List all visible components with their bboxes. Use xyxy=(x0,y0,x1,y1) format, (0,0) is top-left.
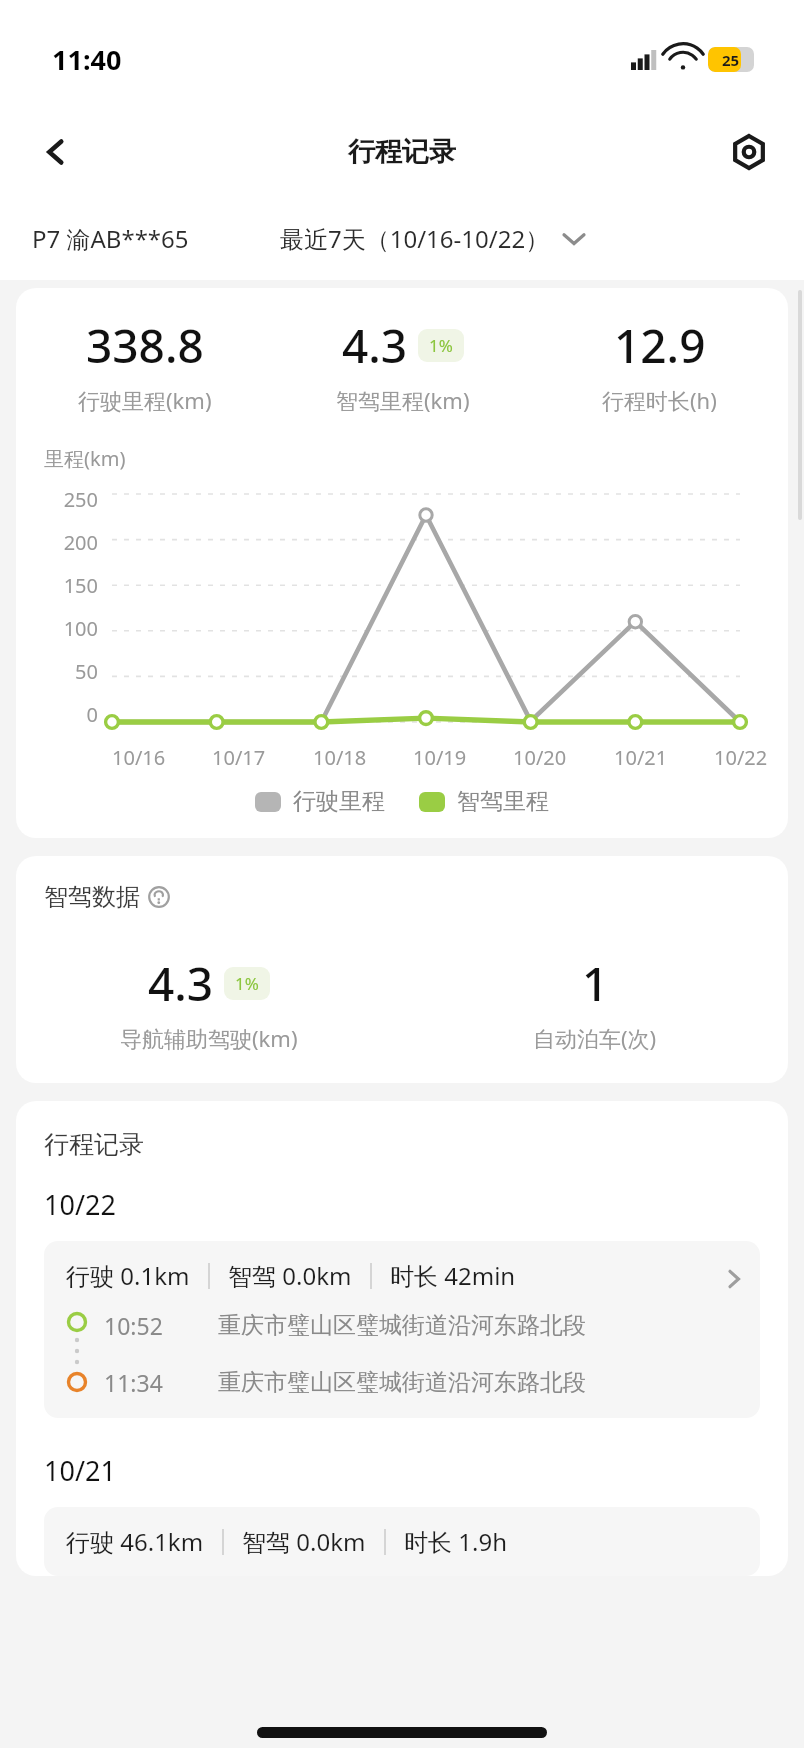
staticText: 行程记录 xyxy=(44,1129,144,1160)
staticText: 150 xyxy=(44,572,98,599)
staticText: 10/16 xyxy=(112,744,166,771)
staticText: 重庆市璧山区璧城街道沿河东路北段 xyxy=(218,1311,586,1340)
staticText: 25 xyxy=(722,50,740,70)
staticText: 10:52 xyxy=(104,1310,200,1341)
staticText: 自动泊车(次) xyxy=(533,1023,657,1053)
staticText: 11:40 xyxy=(52,41,122,78)
staticText: 11:34 xyxy=(104,1367,200,1398)
button[interactable]: Back xyxy=(30,126,82,178)
staticText: 重庆市璧山区璧城街道沿河东路北段 xyxy=(218,1368,586,1397)
staticText: 0 xyxy=(44,701,98,728)
staticText: 50 xyxy=(44,658,98,685)
button[interactable]: 行驶里程 xyxy=(255,787,385,816)
staticText: 1% xyxy=(235,972,259,995)
staticText: 10/21 xyxy=(614,744,668,771)
staticText: 智驾数据 xyxy=(44,882,140,912)
staticText: 行驶 0.1km xyxy=(66,1259,190,1292)
button[interactable]: 智驾里程 xyxy=(419,787,549,816)
staticText: 行程时长(h) xyxy=(602,385,717,415)
staticText: 时长 42min xyxy=(390,1259,516,1292)
staticText: 10/19 xyxy=(413,744,467,771)
staticText: 里程(km) xyxy=(44,445,126,472)
staticText: 最近7天（10/16-10/22） xyxy=(280,222,550,255)
staticText: 10/18 xyxy=(313,744,367,771)
staticText: 行驶里程(km) xyxy=(78,385,212,415)
staticText: 智驾里程(km) xyxy=(336,385,470,415)
button[interactable]: 行驶 46.1km xyxy=(44,1507,760,1576)
staticText: 12.9 xyxy=(614,314,706,377)
staticText: 1% xyxy=(429,334,453,357)
button[interactable]: Settings xyxy=(722,125,776,179)
staticText: 行程记录 xyxy=(348,135,456,169)
button[interactable]: 最近7天（10/16-10/22） xyxy=(280,222,584,255)
button[interactable]: 行驶 0.1km xyxy=(44,1241,760,1418)
staticText: 4.3 xyxy=(342,314,408,377)
staticText: 智驾 0.0km xyxy=(242,1525,366,1558)
button[interactable]: P7 渝AB***65 xyxy=(32,222,189,255)
staticText: 行驶里程 xyxy=(293,787,385,816)
staticText: 导航辅助驾驶(km) xyxy=(120,1023,298,1053)
staticText: 10/20 xyxy=(513,744,567,771)
staticText: 100 xyxy=(44,615,98,642)
staticText: 1 xyxy=(582,952,609,1015)
button[interactable]: 智驾数据 xyxy=(44,882,170,912)
staticText: 智驾 0.0km xyxy=(228,1259,352,1292)
staticText: 338.8 xyxy=(86,314,204,377)
staticText: 10/17 xyxy=(212,744,266,771)
staticText: 10/22 xyxy=(44,1186,116,1223)
staticText: 4.3 xyxy=(148,952,214,1015)
staticText: 200 xyxy=(44,529,98,556)
staticText: 10/21 xyxy=(44,1452,116,1489)
staticText: 10/22 xyxy=(714,744,768,771)
staticText: 智驾里程 xyxy=(457,787,549,816)
staticText: 行驶 46.1km xyxy=(66,1525,204,1558)
staticText: 250 xyxy=(44,486,98,513)
staticText: 时长 1.9h xyxy=(404,1525,507,1558)
